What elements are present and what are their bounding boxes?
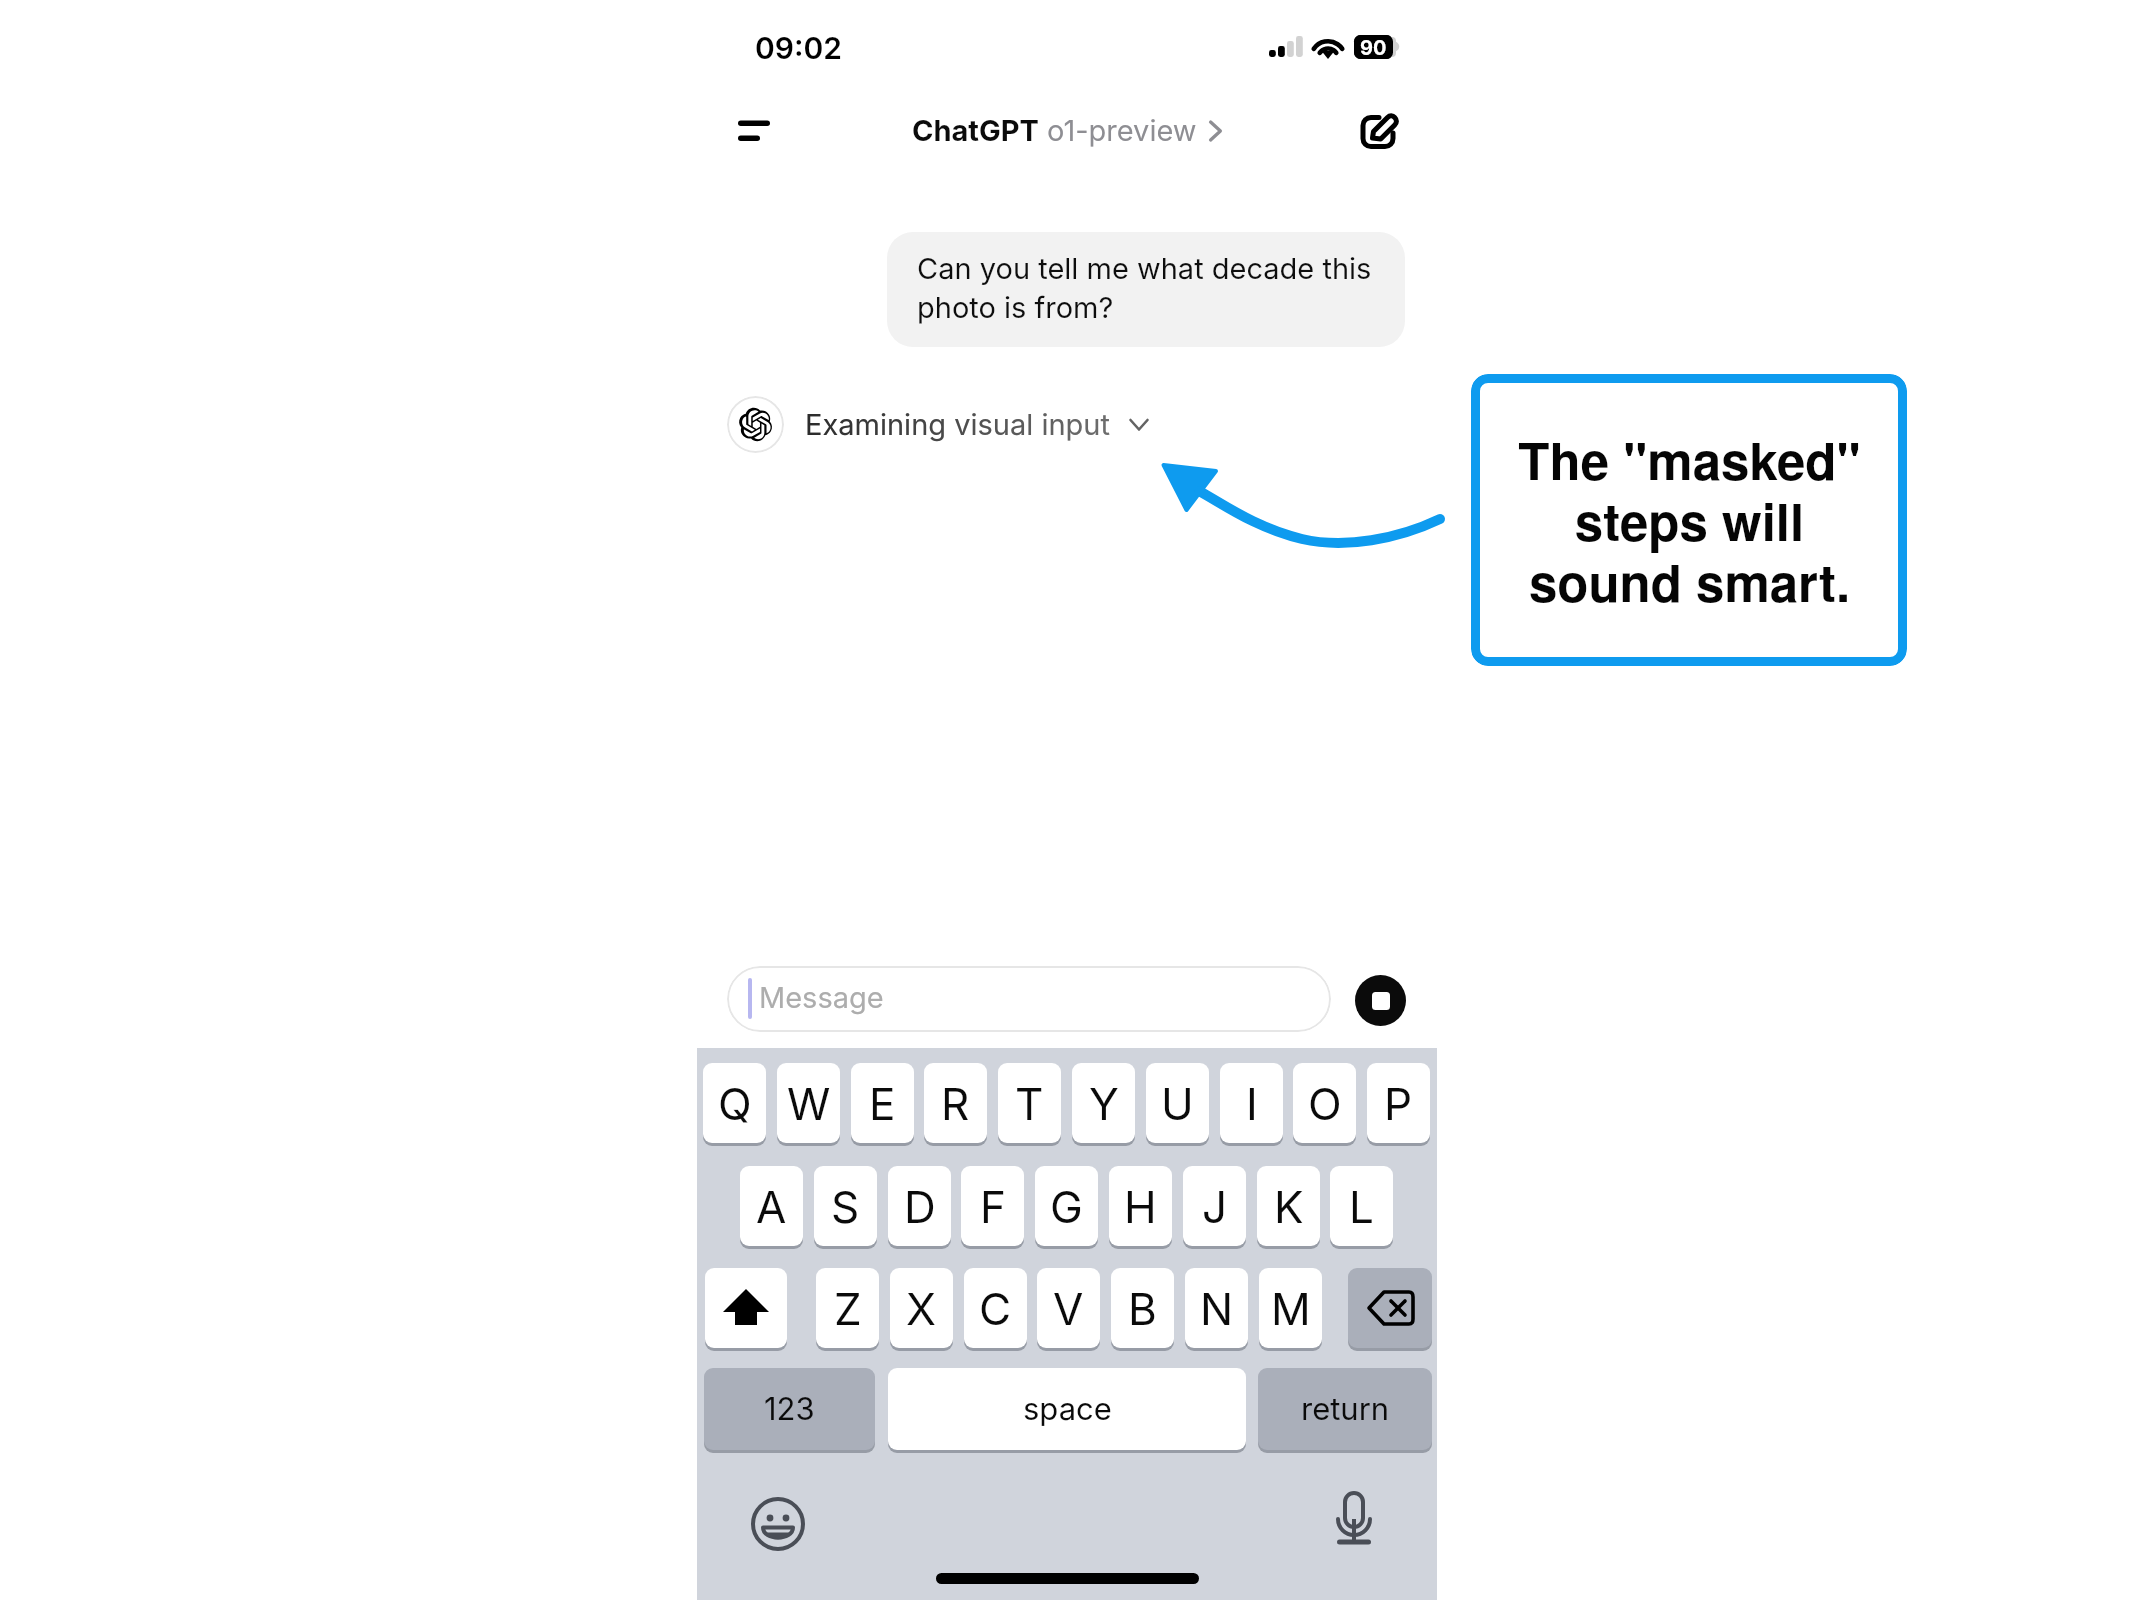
button[interactable]: C bbox=[964, 1268, 1027, 1348]
staticText: space bbox=[1023, 1390, 1112, 1428]
staticText: P bbox=[1384, 1077, 1413, 1130]
button[interactable]: New chat bbox=[1347, 100, 1411, 164]
staticText: X bbox=[906, 1282, 937, 1335]
button[interactable]: The "masked" steps will sound smart. bbox=[1471, 374, 1907, 666]
staticText: L bbox=[1349, 1180, 1374, 1233]
staticText: U bbox=[1161, 1077, 1194, 1130]
button[interactable]: H bbox=[1109, 1166, 1172, 1246]
staticText: O bbox=[1308, 1077, 1342, 1130]
button[interactable]: S bbox=[814, 1166, 877, 1246]
button[interactable]: D bbox=[888, 1166, 951, 1246]
staticText: B bbox=[1128, 1282, 1157, 1335]
button[interactable]: 123 bbox=[704, 1368, 875, 1450]
button[interactable]: return bbox=[1258, 1368, 1432, 1450]
staticText: Y bbox=[1089, 1077, 1119, 1130]
staticText: Z bbox=[834, 1282, 862, 1335]
button[interactable]: Y bbox=[1072, 1063, 1135, 1143]
staticText: C bbox=[979, 1282, 1012, 1335]
button[interactable]: T bbox=[998, 1063, 1061, 1143]
button[interactable]: Shift bbox=[705, 1268, 787, 1348]
button[interactable]: N bbox=[1185, 1268, 1248, 1348]
staticText: Q bbox=[718, 1077, 752, 1130]
button[interactable]: Can you tell me what decade this photo i… bbox=[887, 232, 1405, 347]
button[interactable]: Emoji keyboard bbox=[751, 1497, 805, 1551]
staticText: E bbox=[869, 1077, 896, 1130]
button[interactable]: O bbox=[1293, 1063, 1356, 1143]
button[interactable]: Stop generating bbox=[1355, 975, 1406, 1026]
staticText: W bbox=[787, 1077, 831, 1130]
button[interactable]: Dictate bbox=[1327, 1491, 1381, 1545]
button[interactable]: B bbox=[1111, 1268, 1174, 1348]
button[interactable]: R bbox=[924, 1063, 987, 1143]
staticText: T bbox=[1015, 1077, 1044, 1130]
staticText: R bbox=[941, 1077, 970, 1130]
staticText: ChatGPT o1-preview bbox=[912, 113, 1197, 148]
button[interactable]: Backspace bbox=[1348, 1268, 1432, 1348]
button[interactable]: Examining visual input bbox=[727, 396, 1149, 453]
button[interactable]: V bbox=[1037, 1268, 1100, 1348]
staticText: M bbox=[1271, 1282, 1311, 1335]
staticText: J bbox=[1202, 1180, 1228, 1233]
button[interactable]: Menu bbox=[717, 94, 791, 164]
staticText: 09:02 bbox=[755, 30, 843, 66]
button[interactable]: K bbox=[1257, 1166, 1320, 1246]
button[interactable]: E bbox=[851, 1063, 914, 1143]
button[interactable]: Z bbox=[816, 1268, 879, 1348]
staticText: 123 bbox=[764, 1390, 815, 1428]
button[interactable]: L bbox=[1330, 1166, 1393, 1246]
button[interactable]: Message bbox=[727, 966, 1331, 1032]
staticText: V bbox=[1053, 1282, 1084, 1335]
button[interactable]: J bbox=[1183, 1166, 1246, 1246]
button[interactable]: ChatGPT o1-preview bbox=[912, 104, 1223, 156]
button[interactable]: U bbox=[1146, 1063, 1209, 1143]
staticText: Message bbox=[759, 980, 884, 1015]
button[interactable]: G bbox=[1035, 1166, 1098, 1246]
staticText: Can you tell me what decade this photo i… bbox=[917, 251, 1377, 325]
staticText: H bbox=[1124, 1180, 1157, 1233]
staticText: D bbox=[904, 1180, 936, 1233]
staticText: N bbox=[1200, 1282, 1234, 1335]
staticText: return bbox=[1301, 1390, 1390, 1428]
button[interactable]: W bbox=[777, 1063, 840, 1143]
staticText: S bbox=[831, 1180, 860, 1233]
staticText: Examining visual input bbox=[805, 407, 1110, 442]
button[interactable]: P bbox=[1367, 1063, 1430, 1143]
button[interactable]: M bbox=[1259, 1268, 1322, 1348]
staticText: The "masked" steps will sound smart. bbox=[1518, 423, 1861, 618]
staticText: 90 bbox=[1360, 36, 1387, 60]
button[interactable]: X bbox=[890, 1268, 953, 1348]
staticText: A bbox=[756, 1180, 787, 1233]
staticText: I bbox=[1246, 1077, 1258, 1130]
button[interactable]: F bbox=[961, 1166, 1024, 1246]
button[interactable]: I bbox=[1220, 1063, 1283, 1143]
staticText: G bbox=[1050, 1180, 1083, 1233]
button[interactable]: space bbox=[888, 1368, 1246, 1450]
staticText: F bbox=[980, 1180, 1006, 1233]
button[interactable]: A bbox=[740, 1166, 803, 1246]
staticText: K bbox=[1274, 1180, 1304, 1233]
button[interactable]: Q bbox=[703, 1063, 766, 1143]
